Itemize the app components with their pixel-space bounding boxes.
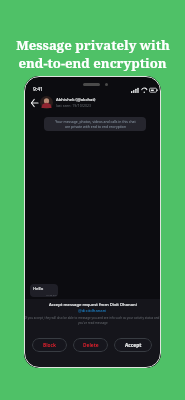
- button[interactable]: [40, 96, 53, 109]
- button[interactable]: Block: [32, 338, 67, 352]
- staticText: Delete: [83, 342, 99, 349]
- staticText: Message privately with: [16, 36, 170, 54]
- staticText: last seen: 19/10/2023: [56, 103, 91, 108]
- staticText: Block: [43, 342, 57, 349]
- button[interactable]: [31, 99, 38, 107]
- button[interactable]: Delete: [73, 338, 108, 352]
- staticText: If you accept, they will also be able to…: [25, 316, 160, 320]
- staticText: Accept message request from Dixit Dhanan…: [49, 302, 137, 308]
- staticText: Accept: [125, 342, 142, 349]
- staticText: Your message, photos, videos and calls i…: [55, 119, 136, 129]
- staticText: Hello: [33, 286, 44, 292]
- staticText: you've read message: [78, 321, 108, 325]
- staticText: Abhishek (@akchat): [56, 97, 96, 103]
- button[interactable]: @dixitdhanani: [78, 308, 107, 314]
- button[interactable]: Accept: [114, 338, 152, 352]
- staticText: 9:41: [33, 86, 43, 93]
- staticText: 10:30 PM: [46, 293, 57, 296]
- staticText: end-to-end encryption: [18, 54, 167, 72]
